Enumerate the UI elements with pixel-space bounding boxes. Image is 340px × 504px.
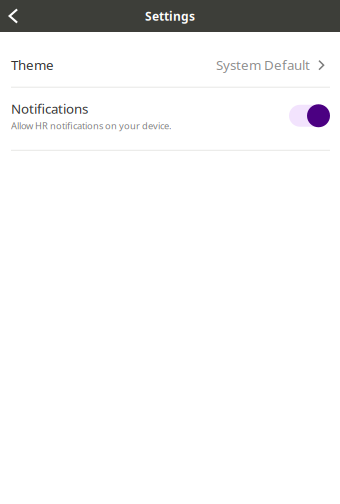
button[interactable]: Notifications — [0, 88, 340, 150]
staticText: Theme — [11, 56, 54, 74]
staticText: Allow HR notifications on your device. — [11, 119, 172, 132]
staticText: Notifications — [11, 100, 88, 117]
staticText: System Default — [216, 56, 310, 74]
button[interactable]: Theme — [0, 32, 340, 87]
staticText: Settings — [145, 8, 195, 24]
button[interactable]: Back — [0, 0, 31, 32]
